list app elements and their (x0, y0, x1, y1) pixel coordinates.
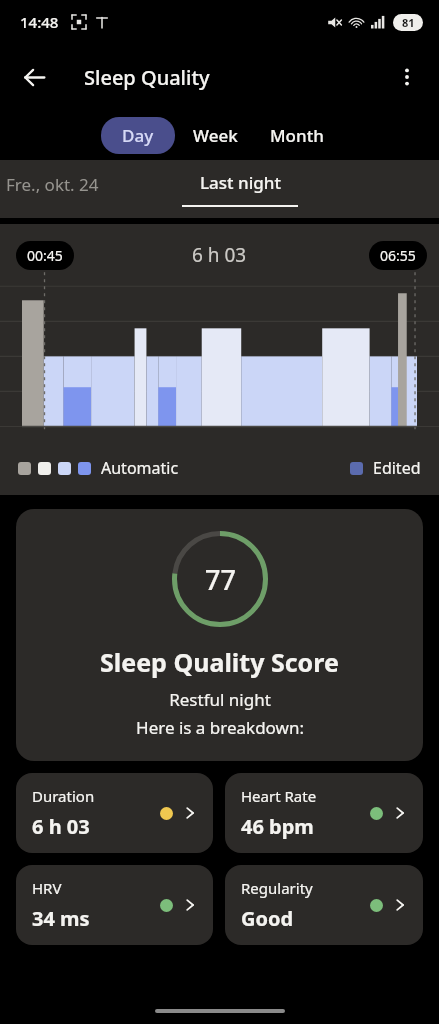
staticText: 14:48 (20, 12, 59, 32)
staticText: Sleep Quality (84, 64, 210, 91)
staticText: Here is a breakdown: (136, 716, 304, 739)
button[interactable]: Fre., okt. 24 (6, 173, 99, 196)
button[interactable]: Day (101, 117, 175, 154)
button[interactable]: Week (175, 117, 256, 154)
staticText: Last night (200, 171, 281, 194)
staticText: 6 h 03 (32, 813, 90, 840)
button[interactable]: Regularity (225, 865, 423, 945)
staticText: Month (270, 124, 324, 147)
staticText: Restful night (169, 688, 271, 711)
staticText: Heart Rate (241, 786, 317, 806)
button[interactable]: Heart Rate (225, 773, 423, 853)
staticText: Sleep Quality Score (100, 645, 339, 679)
button[interactable]: Duration (16, 773, 213, 853)
button[interactable]: More options (383, 53, 431, 101)
staticText: 06:55 (380, 246, 416, 265)
staticText: 6 h 03 (192, 242, 247, 268)
staticText: 81 (402, 15, 415, 30)
staticText: 77 (205, 561, 236, 598)
button[interactable]: Month (256, 117, 338, 154)
staticText: 46 bpm (241, 813, 314, 840)
staticText: 00:45 (27, 246, 63, 265)
staticText: HRV (32, 878, 62, 898)
staticText: Automatic (101, 457, 179, 479)
button[interactable]: Last night (182, 171, 298, 207)
staticText: Regularity (241, 878, 313, 898)
staticText: Edited (373, 457, 421, 479)
staticText: Duration (32, 786, 95, 806)
staticText: 34 ms (32, 905, 90, 932)
button[interactable]: 77 (16, 509, 423, 761)
staticText: Day (122, 124, 154, 147)
staticText: Week (193, 124, 238, 147)
button[interactable]: Back (10, 53, 58, 101)
staticText: Good (241, 905, 294, 932)
button[interactable]: HRV (16, 865, 213, 945)
